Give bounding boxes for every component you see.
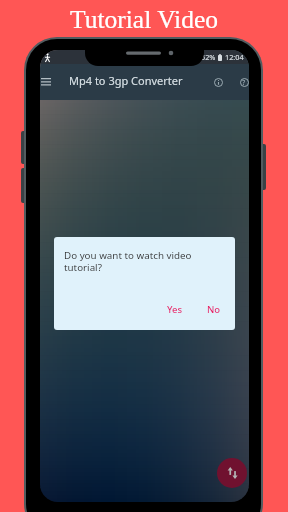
- button[interactable]: Open navigation menu: [40, 64, 56, 100]
- staticText: Mp4 to 3gp Converter: [69, 73, 183, 88]
- button[interactable]: No: [202, 300, 226, 319]
- staticText: 52%: [201, 52, 216, 62]
- button[interactable]: Help: [233, 64, 249, 100]
- staticText: No: [207, 303, 221, 316]
- staticText: ?: [242, 77, 246, 87]
- staticText: Yes: [167, 303, 183, 316]
- staticText: Do you want to watch video tutorial?: [64, 249, 221, 274]
- button[interactable]: Information: [207, 64, 229, 100]
- button[interactable]: Convert video: [217, 458, 247, 488]
- button[interactable]: Yes: [162, 300, 188, 319]
- staticText: Tutorial Video: [70, 5, 218, 33]
- staticText: 12:04: [225, 52, 244, 62]
